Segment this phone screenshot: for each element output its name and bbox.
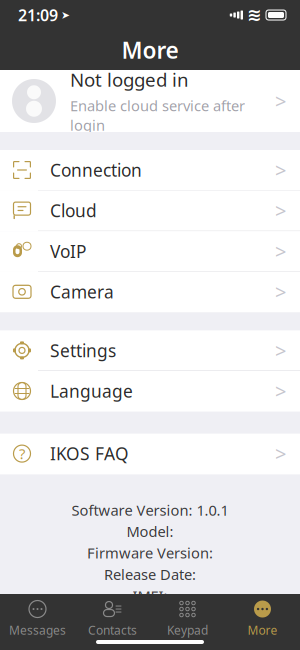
staticText: Release Date:: [104, 565, 196, 584]
staticText: >: [275, 337, 286, 364]
staticText: Not logged in: [70, 67, 189, 92]
staticText: ➤: [61, 9, 70, 21]
staticText: Language: [50, 379, 133, 402]
staticText: Camera: [50, 280, 114, 303]
staticText: VoIP: [50, 240, 86, 263]
staticText: >: [275, 197, 286, 224]
button[interactable]: Keypad: [150, 594, 225, 638]
button[interactable]: Settings: [0, 330, 300, 371]
staticText: >: [275, 278, 286, 305]
staticText: Connection: [50, 158, 142, 181]
staticText: ?: [19, 444, 25, 463]
button[interactable]: Messages: [0, 594, 75, 638]
staticText: Cloud: [50, 199, 97, 222]
button[interactable]: Cloud: [0, 191, 300, 231]
staticText: >: [275, 378, 286, 404]
staticText: >: [275, 238, 286, 264]
staticText: IKOS FAQ: [50, 442, 129, 465]
staticText: Keypad: [167, 622, 208, 638]
staticText: ≋: [247, 5, 262, 25]
staticText: More: [247, 622, 277, 638]
button[interactable]: VoIP: [0, 231, 300, 272]
staticText: Enable cloud service after login: [70, 96, 245, 135]
staticText: 21:09: [18, 4, 58, 26]
staticText: Software Version: 1.0.1: [71, 500, 228, 520]
button[interactable]: Language: [0, 371, 300, 412]
staticText: More: [121, 35, 178, 65]
staticText: Firmware Version:: [87, 543, 213, 563]
staticText: Settings: [50, 339, 116, 362]
button[interactable]: Camera: [0, 272, 300, 312]
button[interactable]: ?: [0, 434, 300, 474]
staticText: >: [275, 88, 286, 114]
staticText: IMEI:: [132, 586, 167, 606]
button[interactable]: Connection: [0, 150, 300, 191]
staticText: Messages: [9, 622, 66, 638]
staticText: Contacts: [88, 622, 137, 638]
button[interactable]: Contacts: [75, 594, 150, 638]
staticText: Model:: [126, 522, 173, 541]
staticText: >: [275, 440, 286, 467]
staticText: >: [275, 157, 286, 183]
button[interactable]: More: [225, 594, 300, 638]
button[interactable]: Not logged in: [0, 70, 300, 132]
